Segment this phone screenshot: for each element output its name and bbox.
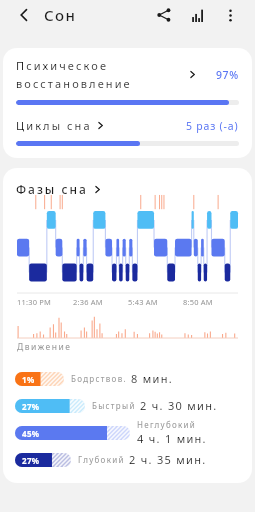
staticText: Глубокий [78,454,125,465]
staticText: Фазы сна [16,181,88,197]
staticText: 2 ч. 30 мин. [140,398,218,413]
staticText: Неглубокий [137,419,197,430]
staticText: восстановление [16,76,132,91]
button[interactable]: Statistics [183,0,213,30]
staticText: Циклы сна [16,118,92,133]
button[interactable]: 27% [15,446,244,473]
staticText: 27% [22,401,40,412]
button[interactable]: Фазы сна [16,181,102,197]
staticText: Психическое [16,58,109,73]
staticText: 2:36 AM [73,297,103,307]
staticText: Движение [17,341,72,353]
staticText: 45% [22,428,40,439]
staticText: Быстрый [92,400,136,411]
staticText: 97% [216,68,239,82]
staticText: 8:50 AM [183,297,213,307]
staticText: 1% [22,374,35,385]
button[interactable]: Циклы сна [16,118,239,133]
staticText: 5:43 AM [128,297,158,307]
staticText: Бодрствов. [71,373,127,384]
button[interactable]: 1% [15,365,244,392]
button[interactable]: 27% [15,392,244,419]
button[interactable]: Психическое [16,58,239,91]
button[interactable]: More options [215,0,245,30]
staticText: 27% [22,455,40,466]
staticText: 11:30 PM [17,297,52,307]
staticText: 4 ч. 1 мин. [137,431,207,446]
button[interactable]: 45% [15,419,244,446]
staticText: Сон [44,5,77,25]
staticText: 5 раз (-а) [186,119,239,133]
staticText: 2 ч. 35 мин. [129,452,207,467]
button[interactable]: Share [149,0,179,30]
staticText: 8 мин. [131,371,173,386]
button[interactable]: Back [10,1,38,29]
